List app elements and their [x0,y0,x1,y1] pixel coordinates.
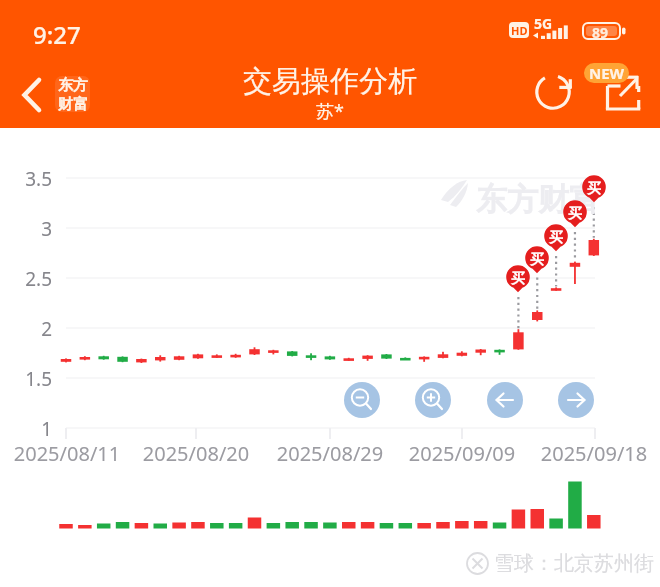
button[interactable]: Pan right [558,382,594,418]
button[interactable]: Buy signal [524,245,550,279]
button[interactable]: Zoom out [344,382,380,418]
button[interactable]: Pan left [487,382,523,418]
button[interactable]: Buy signal [543,223,569,257]
button[interactable]: Buy signal [505,264,531,298]
staticText: 东方财富 [476,180,600,219]
button[interactable]: 东方 [55,76,90,112]
staticText: 3.5 [4,166,52,192]
staticText: 2.5 [4,266,52,292]
staticText: 买 [568,205,582,223]
staticText: NEW [589,63,625,83]
staticText: 1.5 [4,366,52,392]
staticText: 买 [511,270,525,288]
staticText: 3 [4,216,52,242]
staticText: 买 [530,251,544,269]
staticText: 2025/09/18 [528,440,660,467]
staticText: 5G [534,14,553,33]
button[interactable]: Share [602,71,644,113]
staticText: 东方 [58,76,88,95]
staticText: 交易操作分析 [243,63,417,100]
staticText: 1 [4,416,52,442]
staticText: HD [511,23,528,38]
staticText: 雪球：北京苏州街 [494,551,654,576]
staticText: 2025/09/09 [396,440,528,467]
button[interactable]: Buy signal [581,174,607,208]
staticText: 财富 [58,95,88,112]
staticText: 2025/08/11 [1,440,133,467]
staticText: 89 [592,23,609,39]
button[interactable]: Refresh [537,74,573,110]
button[interactable]: Back [15,75,55,115]
staticText: 买 [587,180,601,198]
button[interactable]: Buy signal [562,199,588,233]
staticText: 9:27 [33,18,81,51]
button[interactable]: Zoom in [415,382,451,418]
staticText: 2025/08/20 [130,440,262,467]
staticText: 2025/08/29 [264,440,396,467]
staticText: 2 [4,316,52,342]
staticText: 苏* [316,99,344,124]
staticText: 买 [549,229,563,247]
